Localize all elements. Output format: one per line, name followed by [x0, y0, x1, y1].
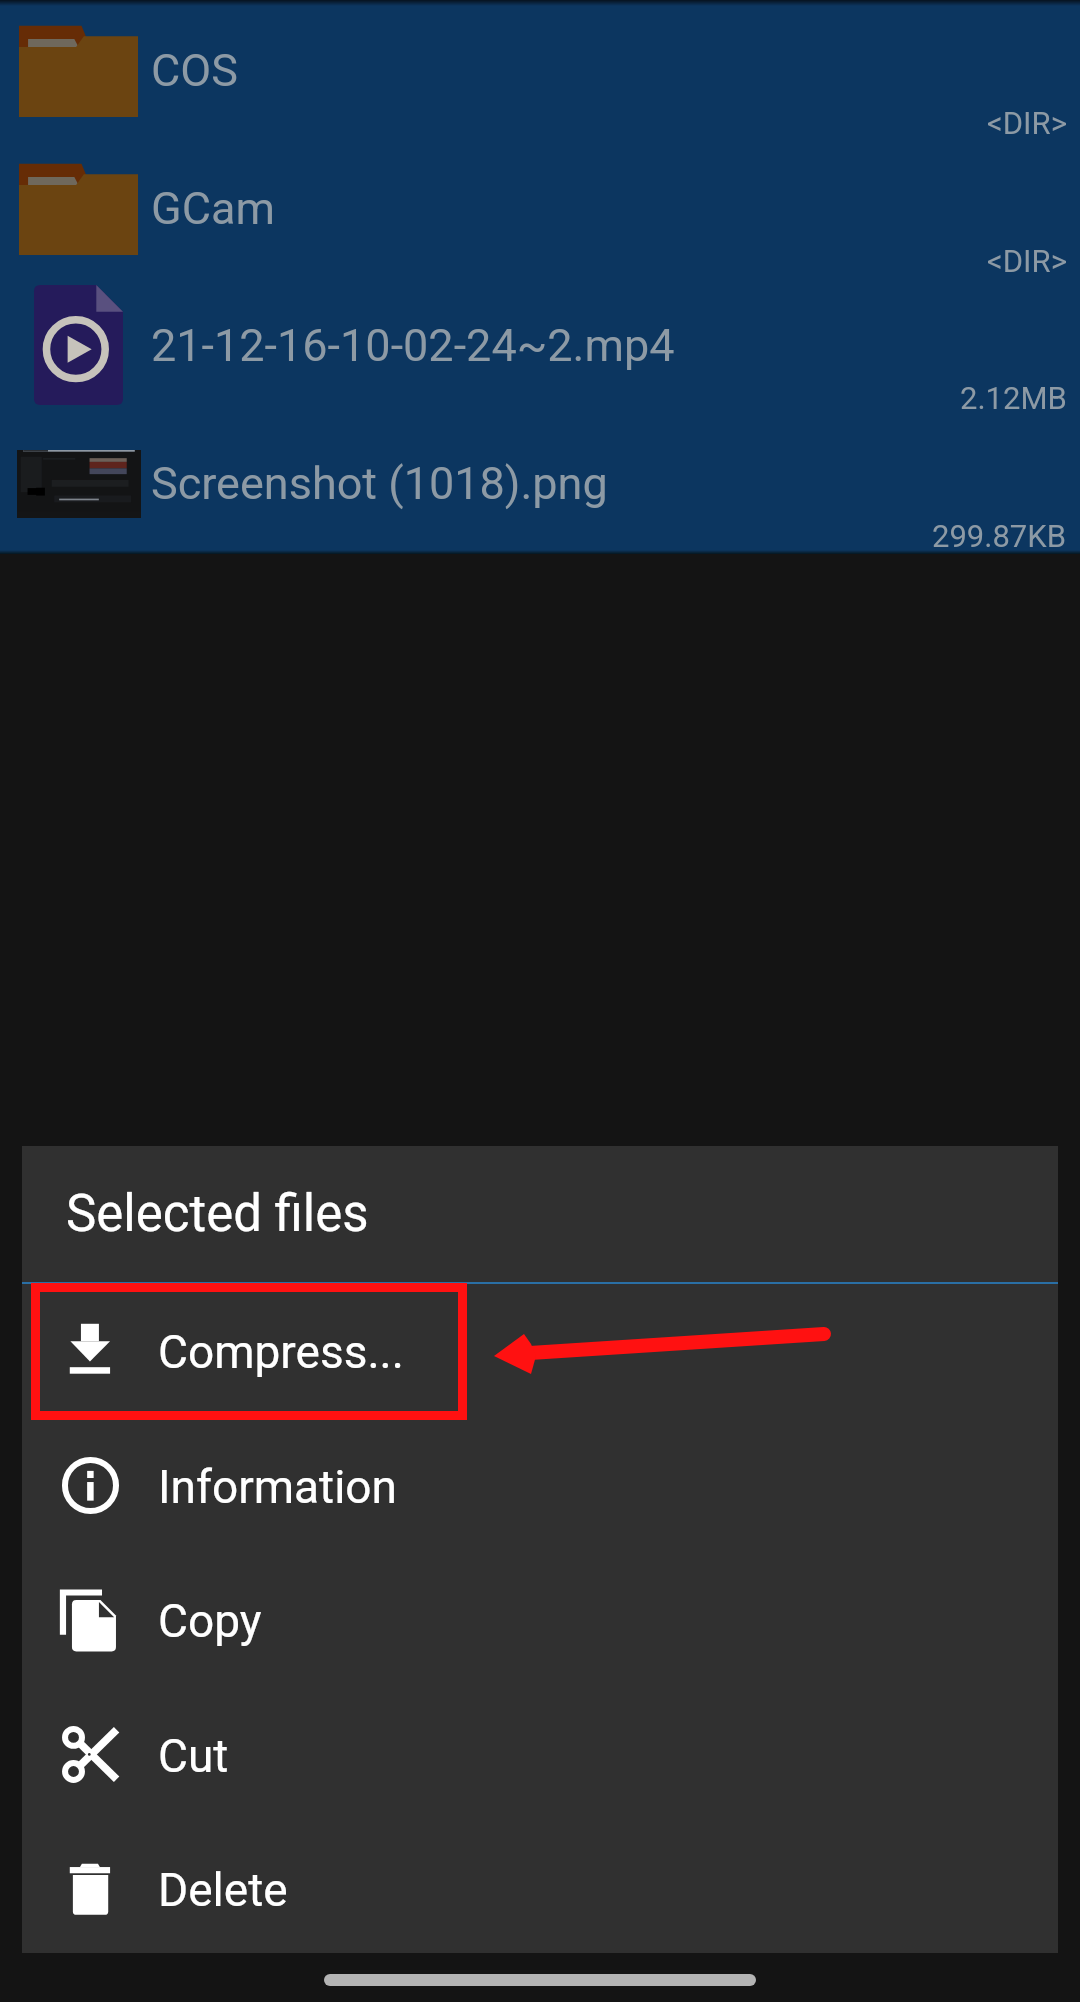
- staticText: Delete: [158, 1863, 288, 1917]
- button[interactable]: Delete: [22, 1823, 1058, 1957]
- staticText: Information: [158, 1460, 397, 1514]
- button[interactable]: Copy: [22, 1554, 1058, 1688]
- staticText: <DIR>: [987, 243, 1067, 279]
- button[interactable]: Cut: [22, 1689, 1058, 1823]
- button[interactable]: GCam, <DIR>: [0, 141, 1080, 278]
- staticText: COS: [151, 44, 238, 97]
- button[interactable]: COS, <DIR>: [0, 3, 1080, 140]
- staticText: Screenshot (1018).png: [151, 457, 608, 510]
- button[interactable]: 21-12-16-10-02-24~2.mp4, 2.12MB: [0, 278, 1080, 415]
- staticText: 21-12-16-10-02-24~2.mp4: [151, 319, 675, 372]
- staticText: 299.87KB: [932, 518, 1067, 554]
- button[interactable]: Screenshot (1018).png, 299.87KB: [0, 416, 1080, 553]
- staticText: 2.12MB: [960, 380, 1067, 416]
- staticText: Copy: [158, 1594, 262, 1648]
- button[interactable]: Compress...: [22, 1285, 1058, 1419]
- staticText: Cut: [158, 1729, 229, 1783]
- button[interactable]: Information: [22, 1420, 1058, 1554]
- staticText: Selected files: [66, 1184, 369, 1244]
- staticText: Compress...: [158, 1325, 404, 1379]
- staticText: <DIR>: [987, 105, 1067, 141]
- staticText: GCam: [151, 182, 275, 235]
